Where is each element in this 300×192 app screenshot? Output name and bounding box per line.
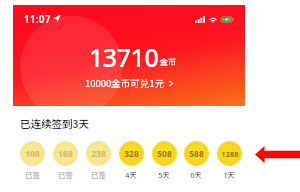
staticText: 10000金币可兑1元: [85, 76, 165, 90]
button[interactable]: 10000金币可兑1元: [85, 76, 173, 90]
staticText: 已签: [58, 169, 73, 180]
button[interactable]: 1288: [213, 141, 245, 180]
button[interactable]: 168: [49, 141, 81, 180]
staticText: 588: [189, 148, 204, 160]
other: Pointer arrow: [255, 146, 300, 163]
staticText: 4天: [125, 169, 137, 180]
button[interactable]: 328: [115, 141, 147, 180]
button[interactable]: 588: [180, 141, 212, 180]
staticText: 7天: [223, 169, 235, 180]
staticText: 11:07: [24, 12, 51, 24]
button[interactable]: 508: [148, 141, 180, 180]
staticText: 508: [157, 148, 172, 160]
staticText: 5天: [158, 169, 170, 180]
button[interactable]: 108: [16, 141, 48, 180]
staticText: 168: [58, 148, 73, 160]
staticText: 13710: [89, 40, 159, 74]
staticText: 已连续签到3天: [20, 116, 89, 131]
staticText: 6天: [190, 169, 202, 180]
staticText: 已签: [25, 169, 40, 180]
staticText: 108: [25, 148, 40, 160]
button[interactable]: 238: [82, 141, 114, 180]
staticText: 238: [91, 148, 106, 160]
staticText: 328: [124, 148, 139, 160]
staticText: 1288: [221, 149, 239, 159]
staticText: 已签: [91, 169, 106, 180]
staticText: 金币: [160, 56, 176, 68]
